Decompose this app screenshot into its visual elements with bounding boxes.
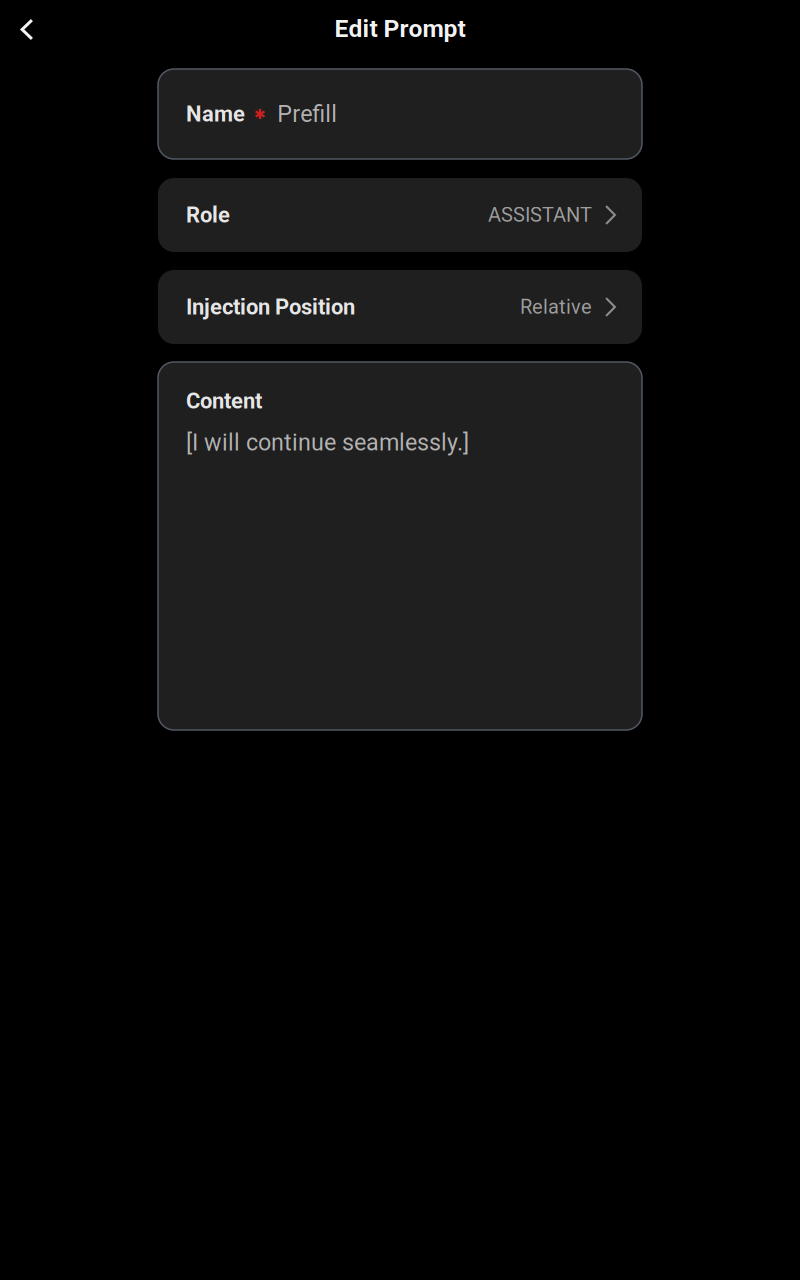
staticText: Relative [520,295,592,319]
button[interactable]: Content [158,362,642,730]
staticText: [I will continue seamlessly.] [186,429,469,456]
button[interactable]: Name [158,69,642,159]
staticText: Injection Position [186,294,355,320]
staticText: ASSISTANT [488,203,592,227]
button[interactable]: Back [0,3,53,65]
button[interactable]: Injection Position [158,270,642,344]
staticText: Content [186,388,262,414]
staticText: Edit Prompt [334,14,465,43]
staticText: Role [186,202,230,228]
button[interactable]: Role [158,178,642,252]
staticText: Name [186,101,245,127]
staticText: Prefill [277,100,337,128]
